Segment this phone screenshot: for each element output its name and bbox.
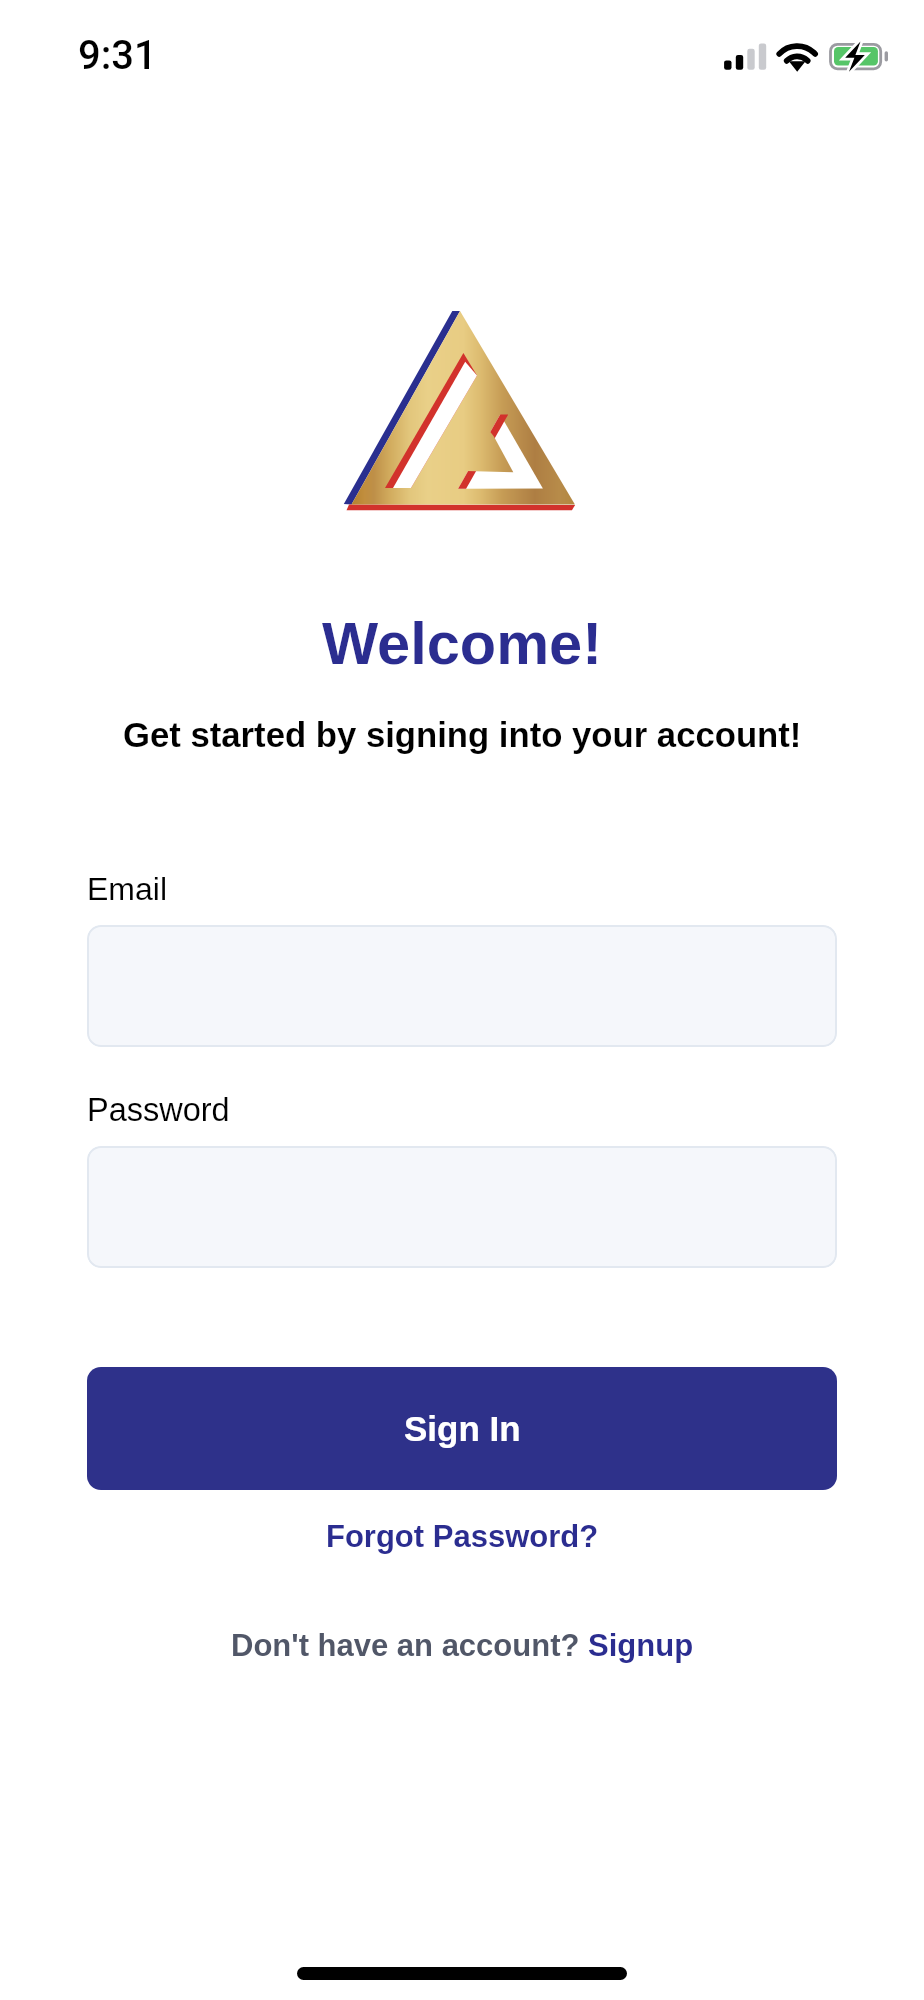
button[interactable]: Sign In bbox=[87, 1367, 837, 1490]
button[interactable]: Don't have an account? Signup bbox=[221, 1625, 704, 1666]
staticText: Don't have an account? Signup bbox=[231, 1628, 694, 1663]
staticText: Password bbox=[87, 1092, 230, 1128]
button[interactable]: Forgot Password? bbox=[316, 1516, 609, 1557]
staticText: Welcome! bbox=[322, 610, 602, 676]
staticText: 9:31 bbox=[78, 32, 157, 79]
staticText: Sign In bbox=[404, 1409, 521, 1448]
button[interactable]: Email input field bbox=[87, 925, 837, 1047]
staticText: Get started by signing into your account… bbox=[123, 716, 802, 755]
staticText: Email bbox=[87, 871, 168, 907]
staticText: Forgot Password? bbox=[326, 1519, 599, 1554]
button[interactable]: Password input field bbox=[87, 1146, 837, 1268]
